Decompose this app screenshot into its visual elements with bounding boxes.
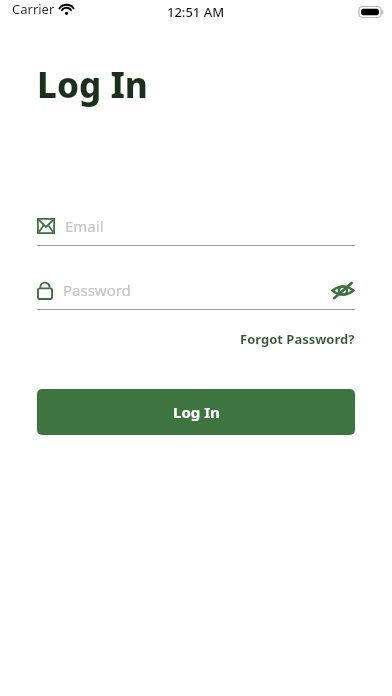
button[interactable]: Forgot Password?	[240, 330, 355, 348]
button[interactable]: Email	[37, 211, 355, 246]
staticText: Carrier	[12, 0, 55, 18]
other: Show password	[331, 281, 355, 300]
staticText: Log In	[37, 61, 148, 109]
staticText: Forgot Password?	[240, 330, 355, 348]
button[interactable]: Password	[37, 275, 355, 310]
staticText: Email	[65, 216, 355, 236]
staticText: 12:51 AM	[167, 3, 225, 21]
staticText: Log In	[173, 402, 220, 422]
staticText: Password	[63, 280, 331, 300]
button[interactable]: Log In	[37, 389, 355, 435]
